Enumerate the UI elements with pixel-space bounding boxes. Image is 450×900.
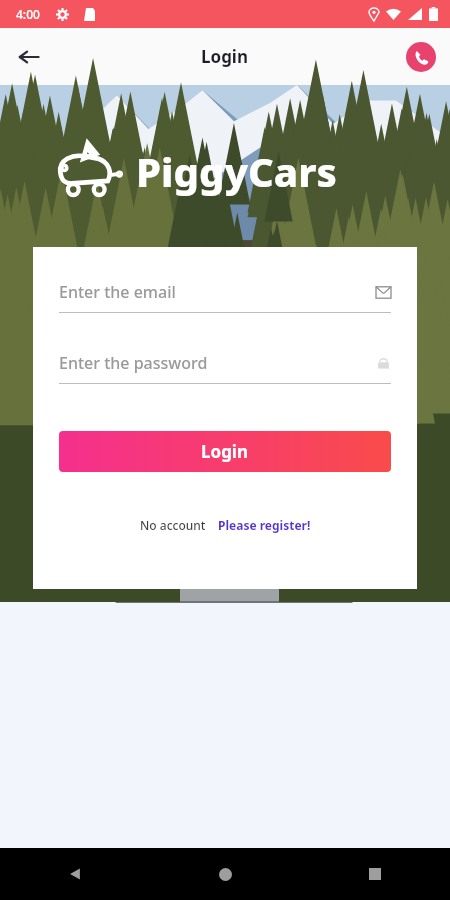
button[interactable]: Home xyxy=(208,857,242,891)
button[interactable]: Recents xyxy=(358,857,392,891)
staticText: Enter the email xyxy=(59,281,376,303)
button[interactable]: Back xyxy=(58,857,92,891)
button[interactable]: Enter the email xyxy=(59,281,391,313)
button[interactable]: Login xyxy=(59,431,391,472)
staticText: Enter the password xyxy=(59,352,376,374)
staticText: 4:00 xyxy=(16,6,40,22)
button[interactable]: Call xyxy=(406,42,436,72)
staticText: No account xyxy=(140,517,206,533)
staticText: Login xyxy=(201,45,249,68)
staticText: Please register! xyxy=(218,517,311,533)
button[interactable]: Please register! xyxy=(218,517,311,533)
button[interactable]: Back xyxy=(6,34,52,80)
staticText: Login xyxy=(201,440,249,463)
staticText: PiggyCars xyxy=(136,144,337,198)
button[interactable]: Enter the password xyxy=(59,352,391,384)
